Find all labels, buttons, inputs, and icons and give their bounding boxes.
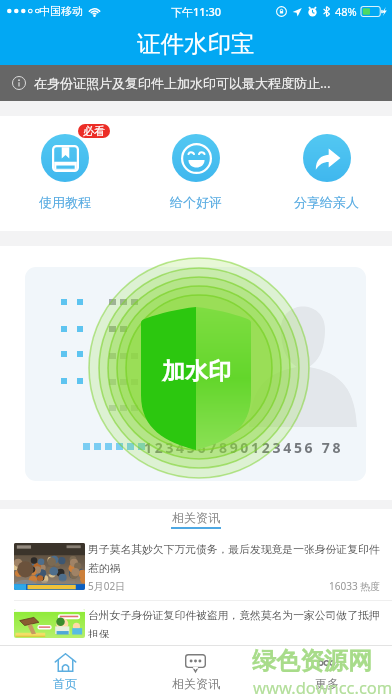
button[interactable]: 给个好评 [130, 116, 261, 231]
staticText: 1234567890123456 78 [144, 438, 344, 457]
staticText: 48% [335, 4, 357, 19]
staticText: 相关资讯 [172, 676, 220, 691]
staticText: 5月02日 [88, 579, 126, 593]
staticText: 分享给亲人 [294, 194, 359, 210]
button[interactable]: 更多 [261, 645, 392, 696]
staticText: 必看 [83, 124, 105, 138]
staticText: 加水印 [162, 357, 231, 386]
staticText: 下午11:30 [171, 4, 222, 19]
staticText: 相关资讯 [172, 510, 220, 525]
staticText: 台州女子身份证复印件被盗用，竟然莫名为一家公司做了抵押担保 [88, 609, 381, 638]
button[interactable]: 分享给亲人 [261, 116, 392, 231]
staticText: 男子莫名其妙欠下万元债务，最后发现竟是一张身份证复印件惹的祸 [88, 543, 381, 575]
staticText: 更多 [315, 676, 339, 691]
button[interactable]: 台州女子身份证复印件被盗用，竟然莫名为一家公司做了抵押担保 [0, 601, 392, 645]
staticText: www.downcc.com [253, 676, 392, 696]
button[interactable]: 男子莫名其妙欠下万元债务，最后发现竟是一张身份证复印件惹的祸 [0, 531, 392, 600]
staticText: 使用教程 [39, 194, 91, 210]
staticText: 首页 [53, 676, 77, 691]
staticText: 给个好评 [170, 194, 222, 210]
staticText: 在身份证照片及复印件上加水印可以最大程度防止... [34, 74, 331, 92]
staticText: 中国移动 [39, 4, 83, 18]
staticText: 绿色资源网 [252, 646, 372, 676]
button[interactable]: 首页 [0, 645, 130, 696]
button[interactable]: 必看 [0, 116, 130, 231]
staticText: 16033 热度 [329, 579, 381, 593]
staticText: 证件水印宝 [137, 29, 255, 59]
button[interactable]: 相关资讯 [130, 645, 261, 696]
